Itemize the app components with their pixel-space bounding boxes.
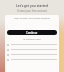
staticText: Sign up with your email address [7, 16, 57, 19]
button[interactable] [7, 58, 57, 61]
staticText: Continue [26, 31, 38, 35]
staticText: Let's get you started [0, 4, 64, 8]
button[interactable]: Continue [7, 30, 57, 35]
staticText: Create your free account [0, 9, 64, 13]
button[interactable] [7, 43, 57, 46]
button[interactable] [7, 53, 57, 56]
button[interactable] [7, 48, 57, 51]
staticText: or continue with [7, 38, 57, 41]
